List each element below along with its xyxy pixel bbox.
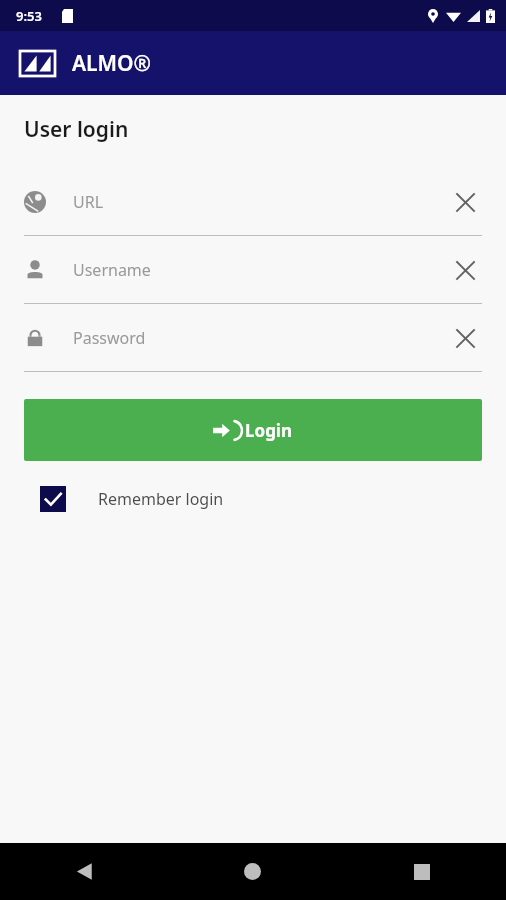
staticText: 9:53 (16, 7, 42, 25)
button[interactable]: URL (0, 168, 506, 235)
button[interactable]: Clear Password (448, 321, 482, 355)
staticText: Login (245, 419, 293, 442)
button[interactable]: Clear Username (448, 253, 482, 287)
staticText: Password (73, 327, 448, 349)
button[interactable]: Recent apps (337, 843, 506, 900)
button[interactable]: Password (0, 304, 506, 371)
staticText: User login (24, 115, 129, 144)
button[interactable]: Home (168, 843, 337, 900)
button[interactable]: Clear URL (448, 185, 482, 219)
button[interactable]: Login (24, 399, 482, 461)
button[interactable]: Back (0, 843, 168, 900)
staticText: ALMO® (72, 49, 152, 78)
button[interactable]: Username (0, 236, 506, 303)
staticText: Username (73, 259, 448, 281)
staticText: Remember login (98, 488, 224, 510)
button[interactable]: Remember login (40, 478, 224, 520)
staticText: URL (73, 191, 448, 213)
other: ALMO logo (20, 51, 55, 76)
